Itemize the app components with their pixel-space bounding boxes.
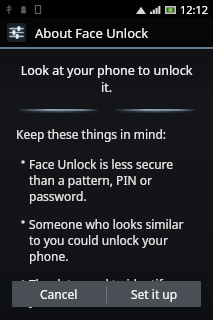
button[interactable]: Cancel — [12, 281, 106, 307]
button[interactable]: Set it up — [107, 281, 201, 307]
staticText: Someone who looks similar to you could u… — [29, 216, 197, 264]
staticText: Cancel — [40, 286, 78, 302]
staticText: Face Unlock is less secure than a patter… — [29, 156, 197, 204]
staticText: About Face Unlock — [35, 24, 149, 42]
other: Face Unlock settings — [7, 23, 26, 42]
staticText: Look at your phone to unlock it. — [16, 62, 197, 96]
staticText: Set it up — [131, 286, 178, 302]
staticText: Keep these things in mind: — [16, 126, 167, 142]
button[interactable]: Face Unlock settings — [0, 18, 213, 47]
staticText: 12:12 — [180, 2, 209, 17]
staticText: The data used to identify your — [29, 276, 197, 308]
